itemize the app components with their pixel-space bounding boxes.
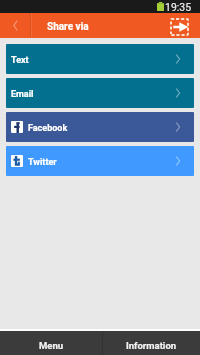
- staticText: Information: [126, 340, 177, 351]
- staticText: Menu: [39, 340, 64, 351]
- staticText: Twitter: [28, 157, 57, 168]
- button[interactable]: Information: [103, 331, 200, 355]
- button[interactable]: Email: [6, 78, 194, 108]
- staticText: Email: [11, 89, 34, 100]
- staticText: Share via: [47, 21, 89, 33]
- button[interactable]: Text: [6, 44, 194, 74]
- button[interactable]: Navigate up: [0, 13, 31, 38]
- button[interactable]: Share: [167, 13, 192, 38]
- staticText: 19:35: [165, 1, 192, 13]
- button[interactable]: Twitter: [6, 146, 194, 176]
- button[interactable]: Menu: [0, 331, 102, 355]
- button[interactable]: Facebook: [6, 112, 194, 142]
- staticText: Facebook: [28, 123, 68, 134]
- staticText: Text: [11, 55, 29, 66]
